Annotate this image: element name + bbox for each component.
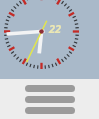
button[interactable]: Analog watch face (0, 0, 99, 79)
button[interactable]: Row 2 (25, 96, 75, 103)
button[interactable]: Row 1 (25, 85, 75, 92)
staticText: 22 (49, 21, 62, 36)
button[interactable]: Row 3 (25, 107, 75, 114)
